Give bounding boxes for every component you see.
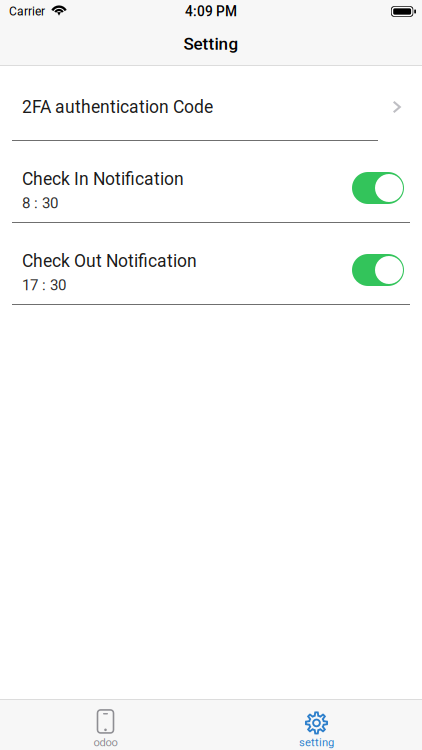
staticText: Carrier [9,4,45,19]
button[interactable]: setting [211,700,422,750]
button[interactable]: Check In Notification [352,172,404,204]
staticText: Check In Notification [22,169,184,189]
staticText: odoo [93,736,117,749]
staticText: 17 : 30 [22,276,66,294]
staticText: setting [299,736,334,749]
button[interactable]: 2FA authentication Code [0,66,422,140]
button[interactable]: odoo [0,700,211,750]
staticText: Setting [183,34,238,54]
staticText: 4:09 PM [185,3,237,20]
staticText: 2FA authentication Code [22,97,213,117]
staticText: 8 : 30 [22,194,58,212]
staticText: Check Out Notification [22,251,197,271]
button[interactable]: Check Out Notification [352,254,404,286]
